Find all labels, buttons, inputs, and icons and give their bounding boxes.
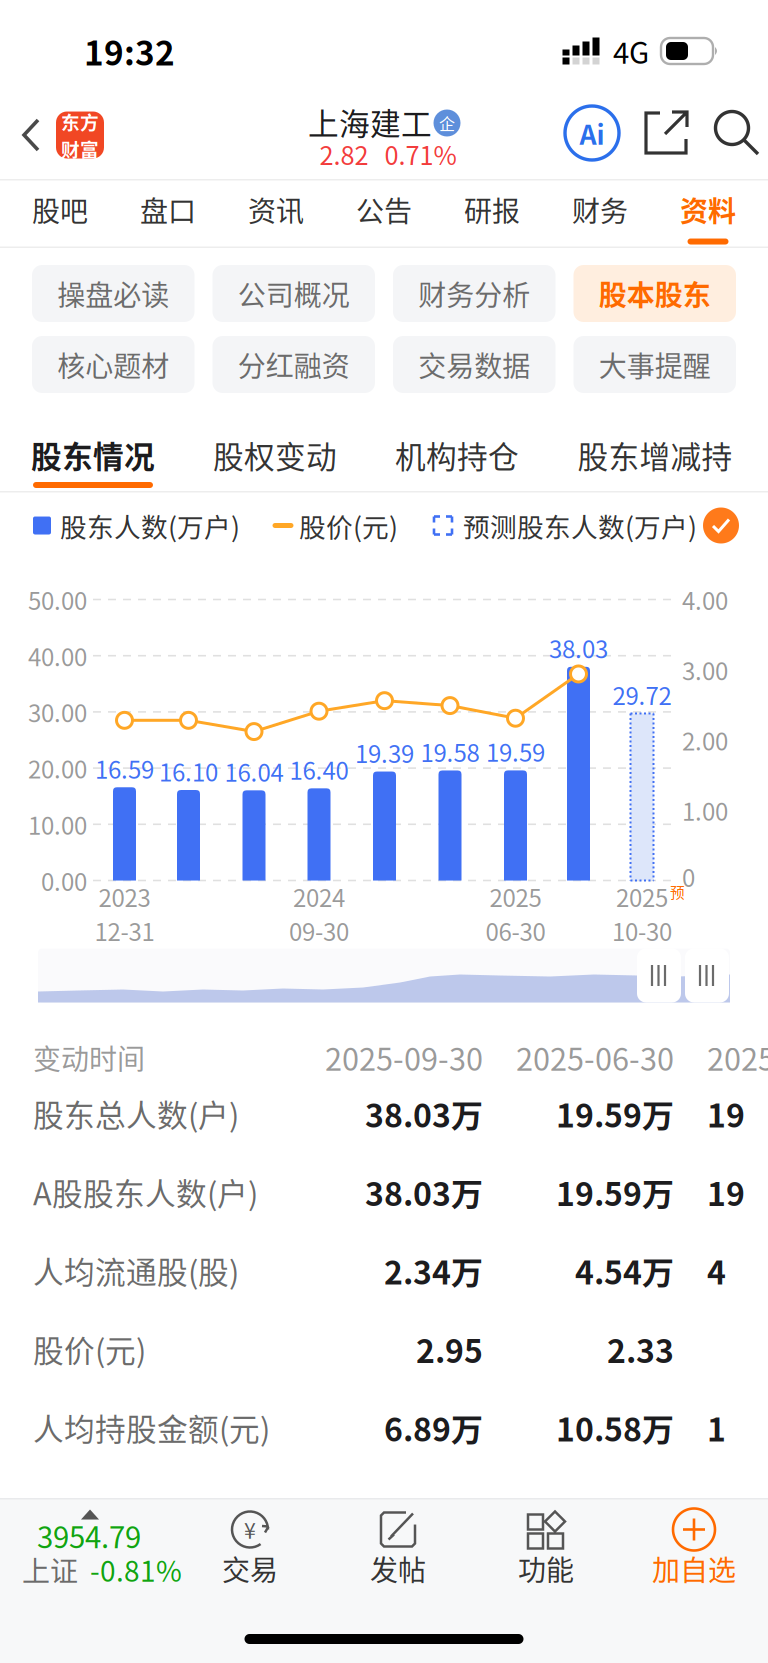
staticText: 股权变动 xyxy=(213,433,337,477)
staticText: 2025 xyxy=(489,879,541,914)
button[interactable]: Toggle forecast series xyxy=(703,507,739,543)
staticText: 16.59 xyxy=(95,751,154,786)
staticText: 10.00 xyxy=(28,807,87,842)
staticText: 19.59万 xyxy=(556,1169,674,1215)
button[interactable]: 股权变动 xyxy=(180,416,370,491)
staticText: 16.40 xyxy=(289,752,348,787)
staticText: 19.59 xyxy=(486,734,545,769)
staticText: 交易 xyxy=(222,1548,278,1589)
staticText: 19.59万 xyxy=(556,1090,674,1137)
button[interactable]: Range start xyxy=(637,948,681,1002)
button[interactable]: Search xyxy=(713,109,761,157)
staticText: 3954.79 xyxy=(37,1514,141,1557)
staticText: 股本股东 xyxy=(599,273,711,314)
button[interactable]: 公司概况 xyxy=(212,265,375,322)
staticText: 股东人数(万户) xyxy=(60,506,240,545)
staticText: 0 xyxy=(682,859,695,894)
staticText: 19.39 xyxy=(355,735,414,770)
staticText: 4G xyxy=(613,30,649,72)
staticText: 19:32 xyxy=(84,27,175,75)
button[interactable]: 核心题材 xyxy=(32,336,194,393)
staticText: 股价(元) xyxy=(299,506,398,545)
staticText: 人均持股金额(元) xyxy=(33,1405,270,1450)
staticText: 股东情况 xyxy=(31,433,155,477)
button[interactable]: Range end xyxy=(685,948,729,1002)
staticText: 30.00 xyxy=(28,694,87,729)
staticText: 19.58 xyxy=(420,734,479,769)
staticText: 2023 xyxy=(98,879,150,914)
button[interactable]: 交易数据 xyxy=(393,336,555,393)
button[interactable]: 大事提醒 xyxy=(573,336,736,393)
staticText: 38.03 xyxy=(549,630,608,665)
staticText: 2.33 xyxy=(607,1326,674,1372)
staticText: 16.04 xyxy=(224,754,283,789)
staticText: 2024 xyxy=(293,879,345,914)
button[interactable]: 股吧 xyxy=(6,180,114,246)
staticText: 上证 xyxy=(22,1549,78,1590)
button[interactable]: Shanghai Composite index xyxy=(0,1497,200,1602)
staticText: 50.00 xyxy=(28,582,87,617)
staticText: 2025-06-30 xyxy=(516,1035,674,1080)
staticText: A股股东人数(户) xyxy=(33,1170,258,1214)
staticText: 分红融资 xyxy=(238,344,350,385)
button[interactable]: 股本股东 xyxy=(573,265,736,322)
button[interactable]: 发帖 xyxy=(323,1497,473,1602)
button[interactable]: 公告 xyxy=(330,180,438,246)
staticText: 机构持仓 xyxy=(395,433,519,477)
staticText: 交易数据 xyxy=(418,344,530,385)
button[interactable]: 研报 xyxy=(438,180,546,246)
staticText: 06-30 xyxy=(485,913,545,948)
button[interactable]: 财务 xyxy=(546,180,654,246)
button[interactable]: 加自选 xyxy=(619,1497,768,1602)
button[interactable]: 盘口 xyxy=(114,180,222,246)
button[interactable]: 资讯 xyxy=(222,180,330,246)
staticText: 10-30 xyxy=(612,913,672,948)
button[interactable]: 操盘必读 xyxy=(32,265,194,322)
staticText: -0.81% xyxy=(90,1549,182,1590)
staticText: 12-31 xyxy=(94,913,154,948)
staticText: 6.89万 xyxy=(384,1404,483,1451)
staticText: 财务分析 xyxy=(418,273,530,314)
staticText: 核心题材 xyxy=(57,344,169,385)
staticText: 3.00 xyxy=(682,652,728,687)
staticText: 38.03万 xyxy=(365,1090,483,1137)
staticText: ¥ xyxy=(244,1514,256,1545)
staticText: 发帖 xyxy=(370,1548,426,1589)
button[interactable]: 财务分析 xyxy=(393,265,555,322)
button[interactable]: ¥ xyxy=(175,1497,325,1602)
button[interactable]: 机构持仓 xyxy=(362,416,552,491)
staticText: 盘口 xyxy=(140,189,196,230)
staticText: 1.00 xyxy=(682,793,728,828)
staticText: 公告 xyxy=(356,189,412,230)
staticText: 2.82 xyxy=(319,136,368,172)
staticText: 预测股东人数(万户) xyxy=(463,506,697,545)
staticText: 财富 xyxy=(61,135,99,162)
button[interactable]: Share xyxy=(643,109,691,157)
staticText: 东方 xyxy=(61,108,99,135)
staticText: 0.00 xyxy=(41,863,87,898)
button[interactable]: 股东增减持 xyxy=(560,416,750,491)
staticText: 2025 xyxy=(707,1035,768,1080)
staticText: 10.58万 xyxy=(556,1404,674,1451)
staticText: 企 xyxy=(439,111,455,135)
staticText: 2.34万 xyxy=(384,1247,483,1294)
button[interactable]: 股东情况 xyxy=(0,416,188,491)
staticText: 19 xyxy=(707,1169,745,1215)
staticText: 16.10 xyxy=(159,754,218,788)
button[interactable]: Back xyxy=(0,92,116,178)
staticText: 2.95 xyxy=(416,1326,483,1372)
staticText: 人均流通股(股) xyxy=(33,1248,239,1293)
staticText: 38.03万 xyxy=(365,1169,483,1215)
staticText: 加自选 xyxy=(652,1548,736,1589)
staticText: 2025-09-30 xyxy=(325,1035,483,1080)
button[interactable]: 分红融资 xyxy=(212,336,375,393)
staticText: 2.00 xyxy=(682,723,728,757)
staticText: 股东增减持 xyxy=(577,433,732,477)
staticText: 4 xyxy=(707,1247,726,1294)
button[interactable]: 资料 xyxy=(654,180,762,246)
button[interactable]: 功能 xyxy=(471,1497,621,1602)
staticText: 资料 xyxy=(680,189,736,230)
staticText: 20.00 xyxy=(28,751,87,785)
staticText: 29.72 xyxy=(612,677,671,712)
button[interactable]: AI assistant xyxy=(565,106,619,160)
